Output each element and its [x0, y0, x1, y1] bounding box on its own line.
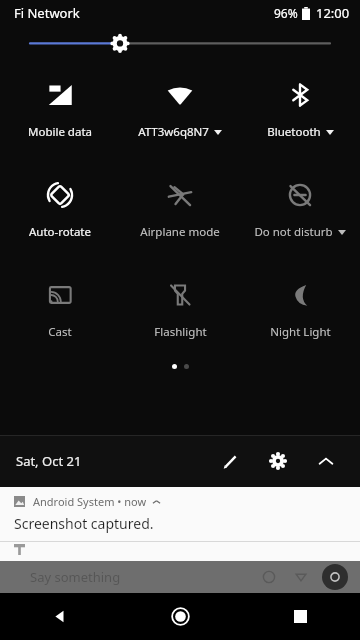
staticText: 96% — [274, 5, 298, 21]
staticText: ATT3w6q8N7 — [138, 124, 209, 140]
staticText: Flashlight — [154, 324, 207, 340]
button[interactable]: Airplane mode — [120, 178, 240, 240]
staticText: Fi Network — [14, 4, 80, 22]
staticText: Do not disturb — [254, 224, 333, 240]
staticText: Night Light — [270, 324, 331, 340]
staticText: Screenshot captured. — [14, 514, 154, 533]
button[interactable]: Night Light — [240, 278, 360, 340]
button[interactable]: Home — [120, 593, 240, 640]
button[interactable]: Bluetooth — [240, 78, 360, 140]
button[interactable]: Flashlight — [120, 278, 240, 340]
button[interactable] — [0, 542, 360, 561]
staticText: Cast — [48, 324, 72, 340]
button[interactable]: Android System • now — [0, 487, 360, 541]
button[interactable]: Collapse — [308, 443, 344, 479]
staticText: Say something — [30, 568, 121, 586]
staticText: Airplane mode — [140, 224, 220, 240]
button[interactable] — [0, 26, 360, 56]
staticText: Mobile data — [28, 124, 92, 140]
staticText: Auto-rotate — [29, 224, 91, 240]
button[interactable]: Cast — [0, 278, 120, 340]
staticText: 12:00 — [316, 4, 350, 22]
button[interactable]: Mobile data — [0, 78, 120, 140]
button[interactable]: Settings — [260, 443, 296, 479]
button[interactable]: Recents — [240, 593, 360, 640]
button[interactable]: Back — [0, 593, 120, 640]
staticText: Sat, Oct 21 — [16, 452, 82, 470]
staticText: Bluetooth — [267, 124, 321, 140]
button[interactable]: ATT3w6q8N7 — [120, 78, 240, 140]
button[interactable]: Auto-rotate — [0, 178, 120, 240]
staticText: Android System • now — [33, 494, 147, 509]
button[interactable]: Edit — [212, 443, 248, 479]
button[interactable]: Do not disturb — [240, 178, 360, 240]
